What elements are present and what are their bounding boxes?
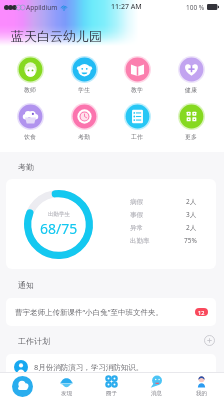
- button[interactable]: 工作: [111, 103, 163, 141]
- staticText: 8月份消防演习，学习消防知识。: [34, 362, 144, 372]
- button[interactable]: 健康: [165, 56, 217, 94]
- staticText: Appildium: [26, 3, 58, 12]
- staticText: 事假: [130, 211, 143, 219]
- button[interactable]: 教学: [111, 56, 163, 94]
- staticText: 出勤率: [130, 237, 150, 245]
- button[interactable]: 教师: [4, 56, 56, 94]
- button[interactable]: 曹宇老师上传新课件“小白兔”至中班文件夹。: [6, 298, 216, 326]
- staticText: 68/75: [40, 219, 78, 238]
- staticText: 曹宇老师上传新课件“小白兔”至中班文件夹。: [15, 307, 163, 317]
- staticText: 饮食: [4, 133, 56, 141]
- staticText: 圈子: [106, 390, 117, 397]
- staticText: 发现: [61, 390, 72, 397]
- staticText: 学生: [58, 86, 110, 94]
- button[interactable]: 添加工作计划: [204, 335, 215, 346]
- button[interactable]: 考勤: [58, 103, 110, 141]
- staticText: 消息: [151, 390, 162, 397]
- button[interactable]: 出勤学生: [6, 179, 216, 269]
- staticText: 3人: [186, 210, 197, 219]
- button[interactable]: 圈子: [89, 372, 134, 400]
- staticText: 通知: [18, 280, 34, 290]
- staticText: 工作计划: [18, 336, 50, 346]
- button[interactable]: 学生: [58, 56, 110, 94]
- staticText: 12: [198, 309, 205, 316]
- staticText: 异常: [130, 224, 143, 232]
- staticText: 教学: [111, 86, 163, 94]
- staticText: 更多: [165, 133, 217, 141]
- staticText: 2人: [186, 197, 197, 206]
- staticText: 病假: [130, 198, 143, 206]
- button[interactable]: 8月份消防演习，学习消防知识。: [6, 354, 216, 380]
- staticText: 出勤学生: [48, 211, 70, 218]
- button[interactable]: 我的: [179, 372, 224, 400]
- staticText: 健康: [165, 86, 217, 94]
- staticText: 考勤: [18, 162, 34, 172]
- staticText: 蓝天白云幼儿园: [11, 28, 102, 44]
- staticText: 75%: [184, 236, 197, 245]
- staticText: 教师: [4, 86, 56, 94]
- staticText: 2人: [186, 223, 197, 232]
- button[interactable]: 消息: [134, 372, 179, 400]
- staticText: 我的: [196, 390, 207, 397]
- button[interactable]: 首页: [0, 372, 44, 400]
- staticText: 考勤: [58, 133, 110, 141]
- button[interactable]: 饮食: [4, 103, 56, 141]
- button[interactable]: 发现: [44, 372, 89, 400]
- staticText: 11:27 AM: [111, 2, 142, 12]
- button[interactable]: 更多: [165, 103, 217, 141]
- staticText: 100 %: [186, 3, 205, 12]
- staticText: 工作: [111, 133, 163, 141]
